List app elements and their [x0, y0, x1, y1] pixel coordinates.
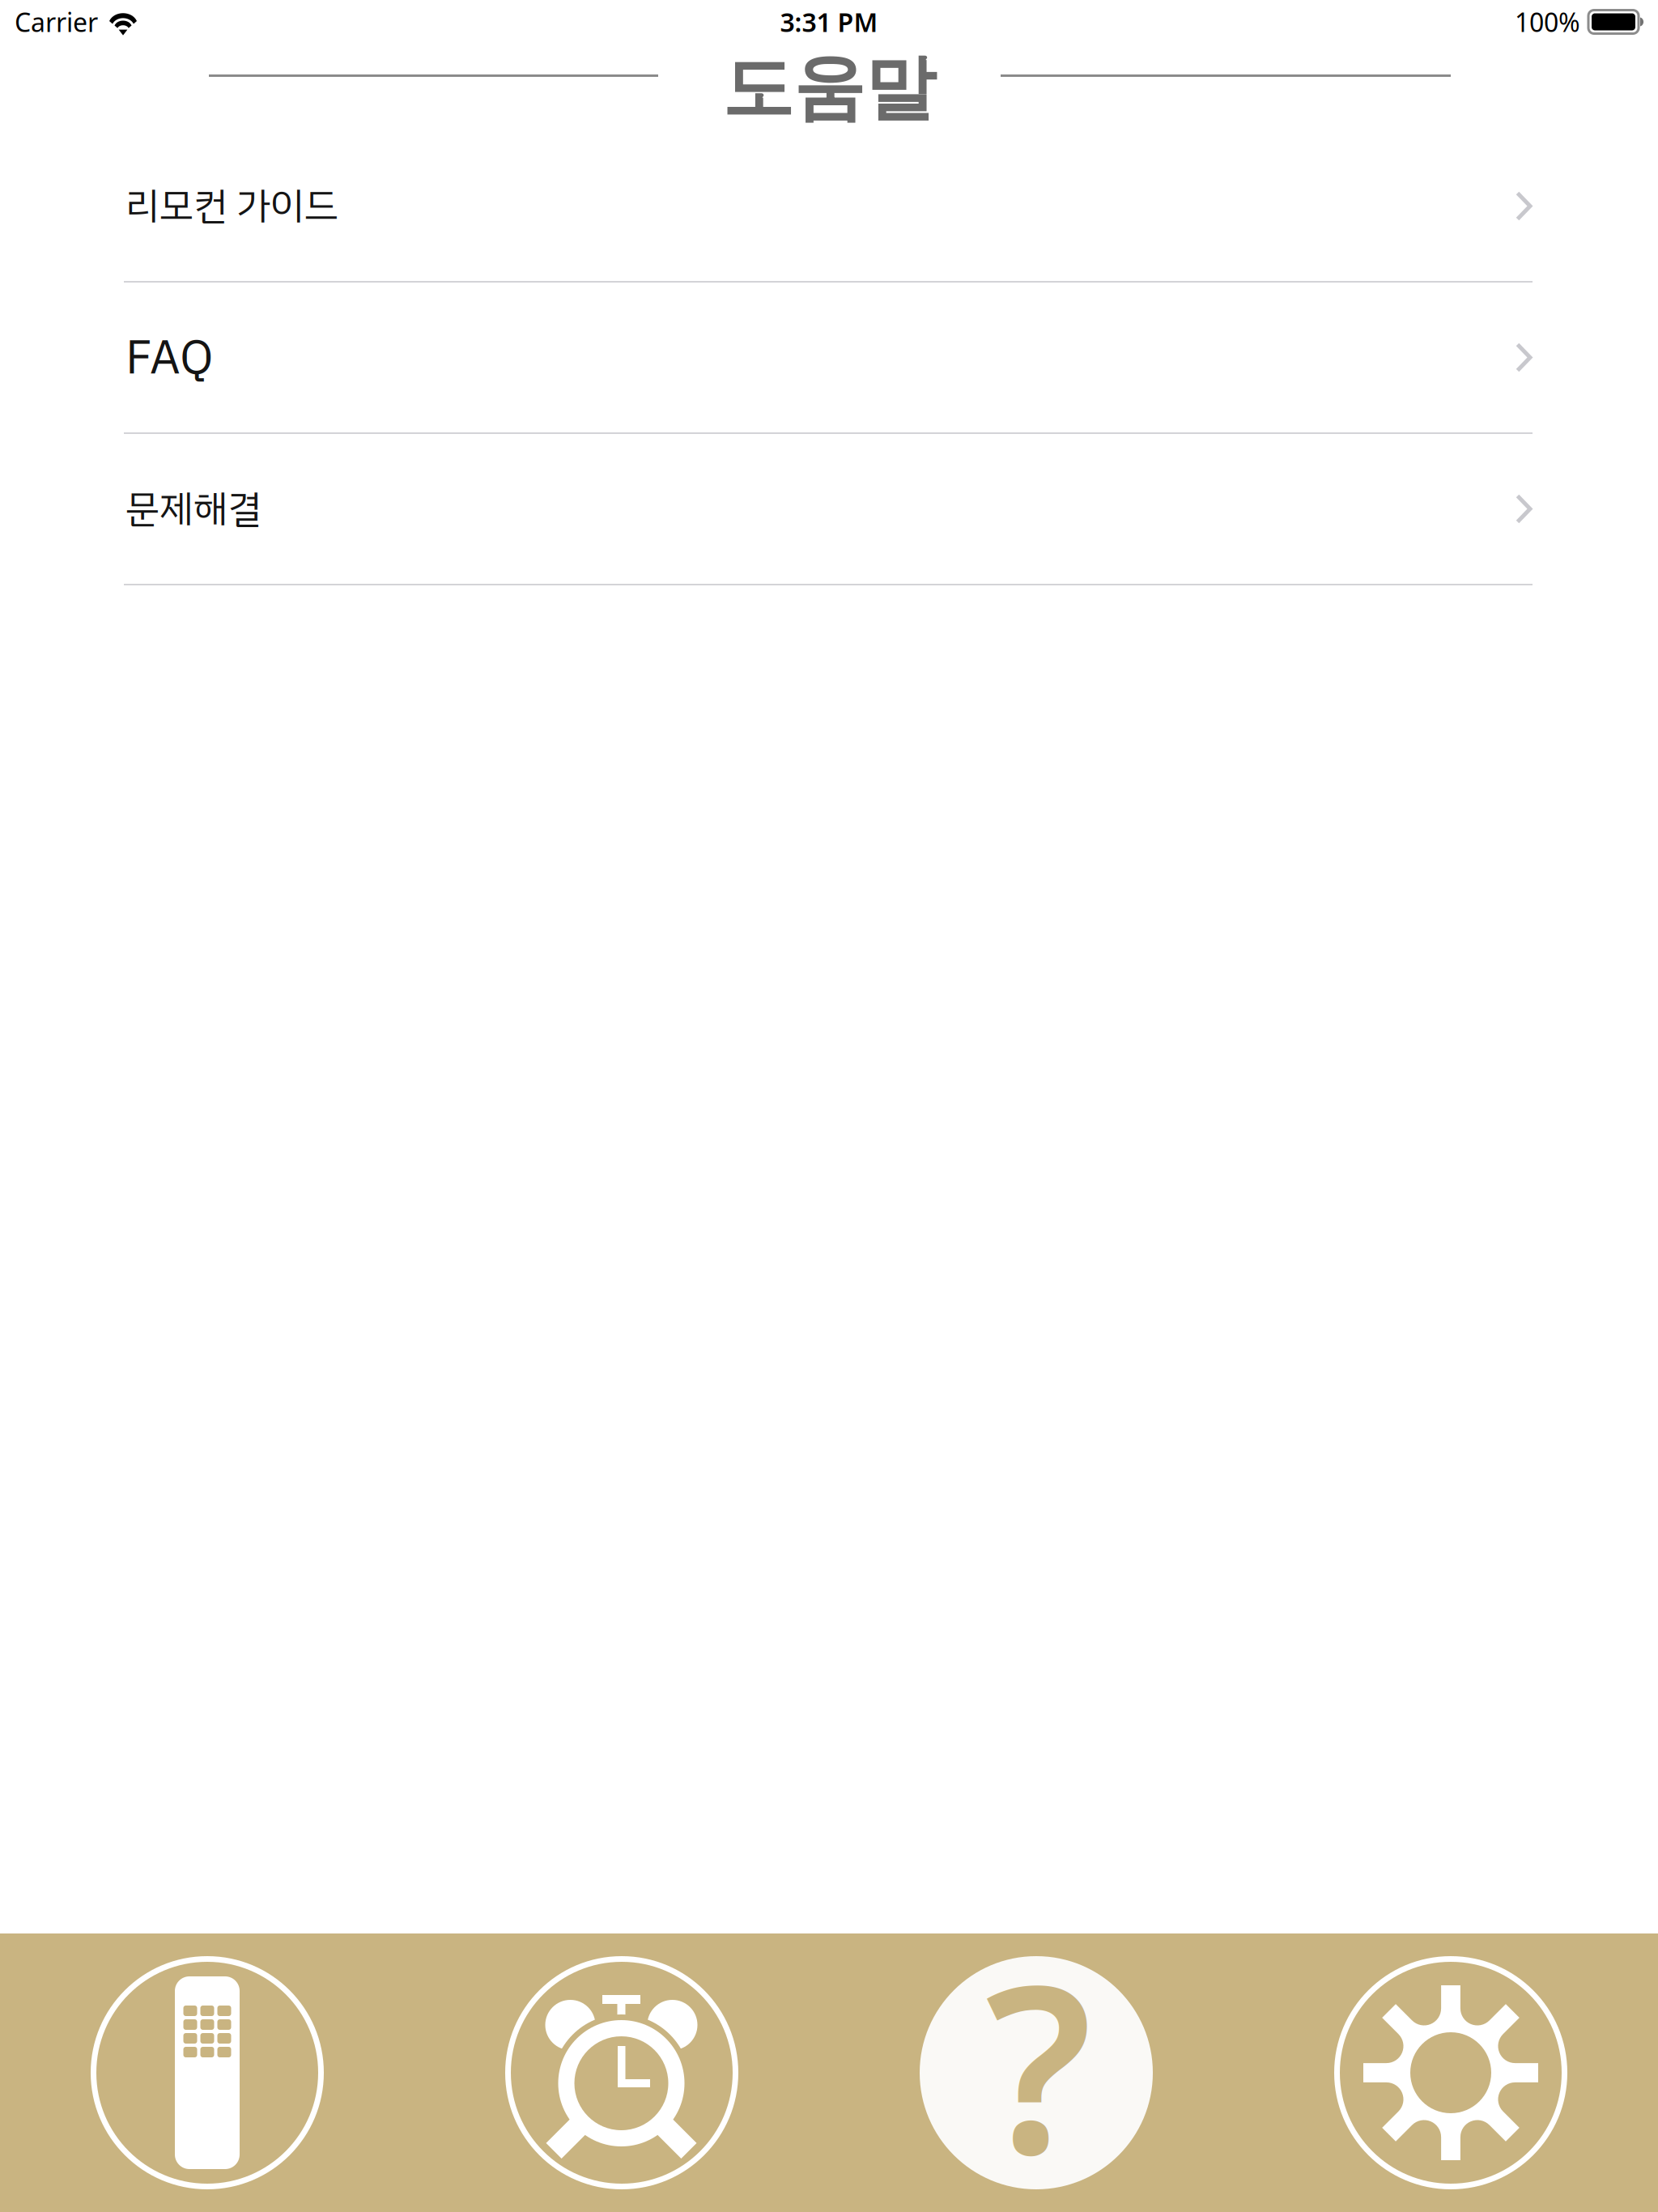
button[interactable]: 리모컨 가이드: [0, 131, 1658, 283]
button[interactable]: 문제해결: [0, 434, 1658, 585]
staticText: 3:31 PM: [780, 5, 878, 39]
staticText: 도움말: [722, 45, 936, 132]
staticText: ?: [985, 1909, 1092, 2212]
staticText: 리모컨 가이드: [125, 178, 338, 234]
button[interactable]: FAQ: [0, 283, 1658, 434]
button[interactable]: Remote: [0, 1956, 414, 2189]
staticText: 문제해결: [125, 481, 261, 537]
staticText: Carrier: [15, 5, 98, 39]
button[interactable]: Settings: [1243, 1956, 1658, 2189]
button[interactable]: Help: [829, 1956, 1243, 2189]
button[interactable]: Timer: [414, 1956, 829, 2189]
staticText: 100%: [1515, 5, 1580, 39]
staticText: FAQ: [125, 322, 214, 393]
